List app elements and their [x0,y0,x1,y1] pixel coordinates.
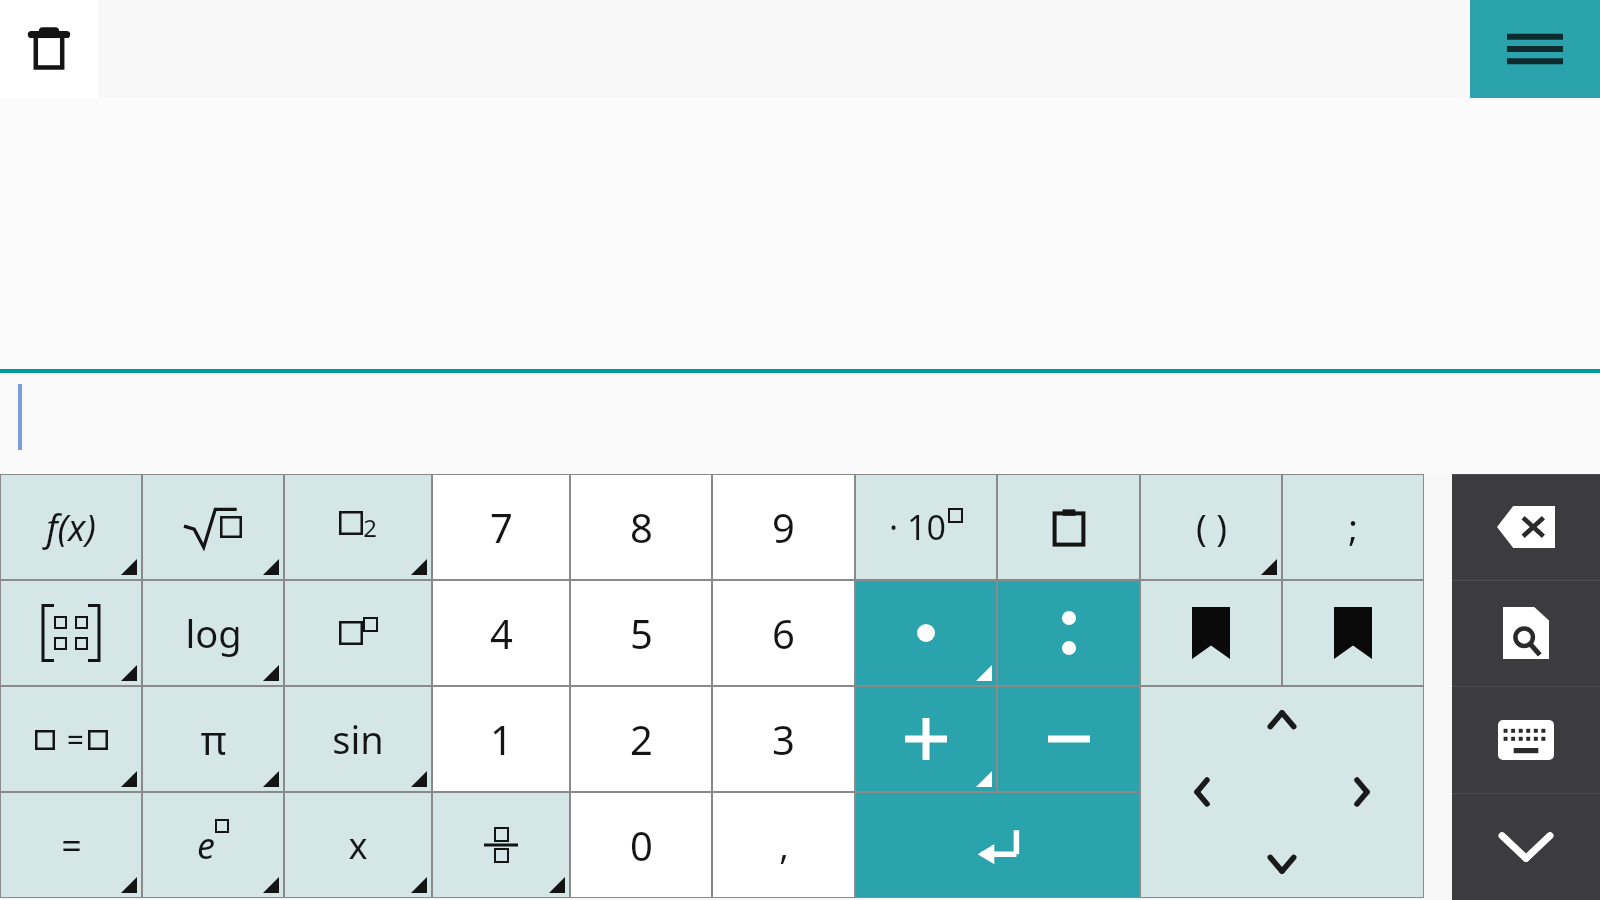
staticText: 8 [630,500,653,554]
button[interactable]: Bookmarks [1282,580,1424,686]
button[interactable]: 2 [570,686,712,792]
staticText: π [200,712,227,766]
button[interactable]: Bookmark [1140,580,1282,686]
staticText: 2 [363,511,377,544]
button[interactable]: Fraction [432,792,570,898]
staticText: 7 [490,500,513,554]
button[interactable]: Cursor keys [1140,686,1424,898]
button[interactable]: Menu [1470,0,1600,98]
button[interactable]: x [284,792,432,898]
staticText: = [55,719,88,760]
button[interactable]: Square root [142,474,284,580]
staticText: 9 [772,500,795,554]
button[interactable]: Logarithm [142,580,284,686]
staticText: f(x) [46,503,96,552]
staticText: log [185,607,242,659]
staticText: sin [332,713,384,765]
button[interactable]: Clear [0,0,98,98]
button[interactable]: e to the power [142,792,284,898]
button[interactable]: Multiply [855,580,997,686]
button[interactable]: Matrix [0,580,142,686]
button[interactable]: 6 [712,580,855,686]
button[interactable]: Sine [284,686,432,792]
staticText: ; [1348,503,1358,552]
staticText: 1 [490,712,513,766]
staticText: 0 [630,818,653,872]
button[interactable]: 5 [570,580,712,686]
staticText: = [61,821,82,870]
button[interactable]: Enter [855,792,1140,898]
button[interactable]: Backspace [1452,474,1600,580]
button[interactable]: Parentheses [1140,474,1282,580]
staticText: 3 [772,712,795,766]
staticText: e [197,821,215,870]
button[interactable]: Hide keyboard [1452,793,1600,900]
button[interactable]: Times ten to the power [855,474,997,580]
button[interactable]: Show keyboard [1452,686,1600,793]
button[interactable]: Divide [997,580,1140,686]
button[interactable]: Square [284,474,432,580]
button[interactable]: 9 [712,474,855,580]
button[interactable]: 4 [432,580,570,686]
button[interactable]: Minus [997,686,1140,792]
button[interactable]: Preview document [1452,580,1600,686]
button[interactable]: f of x [0,474,142,580]
button[interactable]: Comma [712,792,855,898]
staticText: 6 [772,606,795,660]
button[interactable]: Power [284,580,432,686]
button[interactable]: Plus [855,686,997,792]
button[interactable]: Semicolon [1282,474,1424,580]
staticText: x [348,821,368,870]
button[interactable]: Equation [0,686,142,792]
button[interactable]: Equals [0,792,142,898]
staticText: 4 [490,606,513,660]
button[interactable]: 3 [712,686,855,792]
button[interactable]: Paste [997,474,1140,580]
button[interactable]: 1 [432,686,570,792]
button[interactable]: 0 [570,792,712,898]
staticText: 5 [630,606,653,660]
staticText: · 10 [889,504,946,550]
staticText: 2 [630,712,653,766]
button[interactable]: 8 [570,474,712,580]
staticText: ( ) [1196,503,1227,552]
button[interactable]: Pi [142,686,284,792]
button[interactable]: 7 [432,474,570,580]
staticText: , [779,821,789,870]
